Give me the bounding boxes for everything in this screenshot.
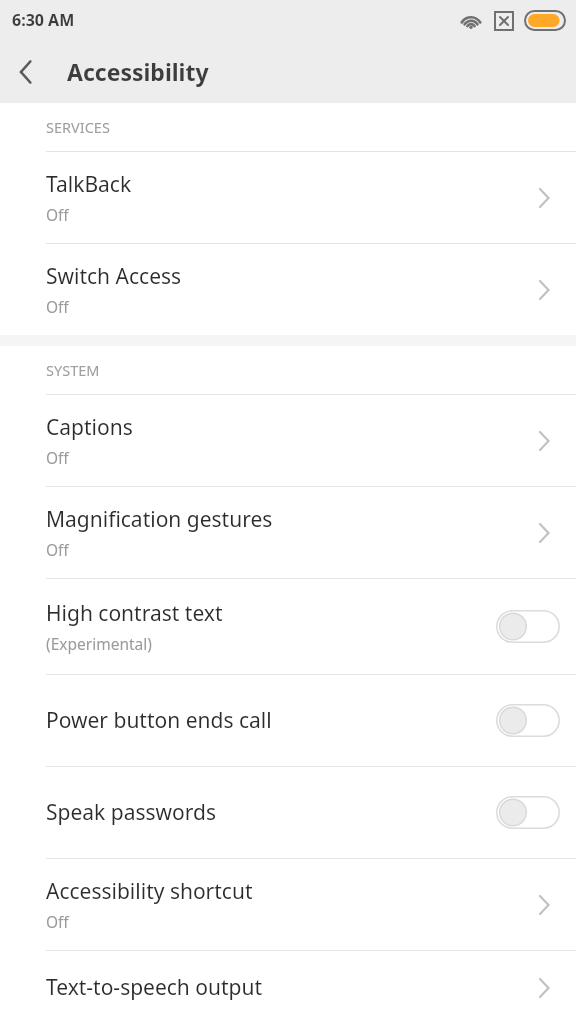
staticText: Off xyxy=(46,539,69,560)
button[interactable]: Accessibility shortcut xyxy=(0,859,576,950)
staticText: Switch Access xyxy=(46,262,182,291)
staticText: 6:30 AM xyxy=(12,9,75,31)
button[interactable]: Speak passwords xyxy=(0,767,576,858)
staticText: SYSTEM xyxy=(46,360,100,380)
button[interactable]: TalkBack xyxy=(0,152,576,243)
staticText: TalkBack xyxy=(46,170,132,199)
staticText: Captions xyxy=(46,413,133,442)
staticText: Speak passwords xyxy=(46,798,216,827)
button[interactable]: Toggle xyxy=(496,704,560,737)
staticText: Text-to-speech output xyxy=(46,973,263,1002)
staticText: Off xyxy=(46,296,69,317)
staticText: Accessibility xyxy=(67,56,209,87)
staticText: Accessibility shortcut xyxy=(46,877,253,906)
staticText: Off xyxy=(46,204,69,225)
button[interactable]: Switch Access xyxy=(0,244,576,335)
button[interactable]: Magnification gestures xyxy=(0,487,576,578)
staticText: High contrast text xyxy=(46,599,223,628)
button[interactable]: Toggle xyxy=(496,796,560,829)
button[interactable]: Back xyxy=(0,46,52,98)
staticText: Off xyxy=(46,447,69,468)
button[interactable]: Text-to-speech output xyxy=(0,951,576,1024)
staticText: (Experimental) xyxy=(46,633,152,654)
staticText: Magnification gestures xyxy=(46,505,273,534)
staticText: Off xyxy=(46,911,69,932)
button[interactable]: Captions xyxy=(0,395,576,486)
staticText: SERVICES xyxy=(46,117,110,137)
button[interactable]: High contrast text xyxy=(0,579,576,674)
staticText: Power button ends call xyxy=(46,706,272,735)
button[interactable]: Toggle xyxy=(496,610,560,643)
button[interactable]: Power button ends call xyxy=(0,675,576,766)
